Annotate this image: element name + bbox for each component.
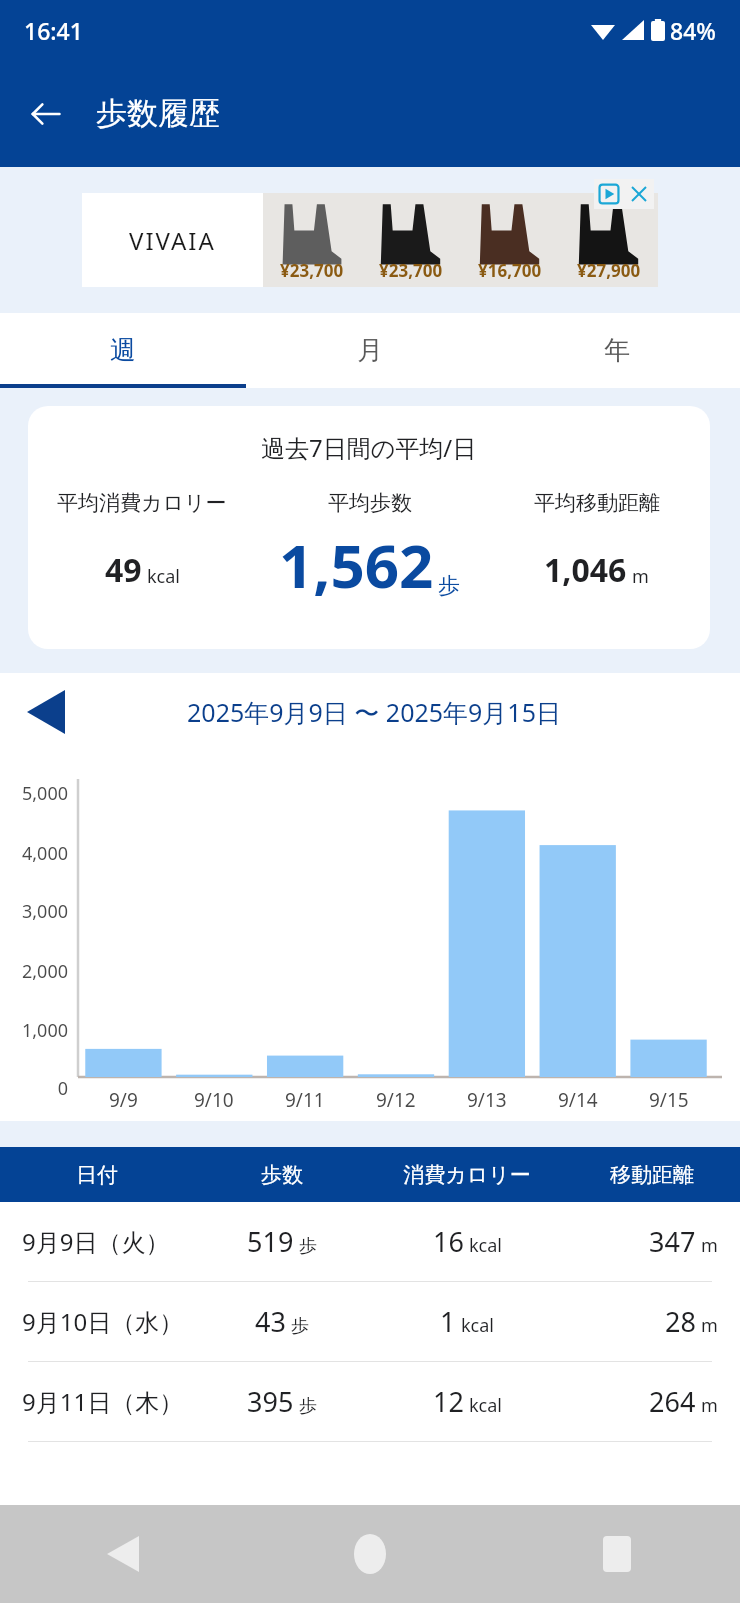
staticText: 歩 bbox=[291, 1315, 309, 1338]
button[interactable]: Ad choices bbox=[594, 179, 624, 209]
button[interactable]: 年 bbox=[493, 313, 740, 388]
staticText: 347 bbox=[649, 1223, 696, 1260]
staticText: 9/13 bbox=[467, 1087, 507, 1113]
staticText: 3,000 bbox=[0, 899, 68, 924]
staticText: 歩数履歴 bbox=[96, 94, 220, 133]
staticText: kcal bbox=[469, 1233, 502, 1258]
staticText: 日付 bbox=[0, 1162, 194, 1188]
button[interactable]: Home bbox=[246, 1505, 493, 1603]
staticText: 週 bbox=[110, 334, 136, 367]
staticText: 歩 bbox=[299, 1235, 317, 1258]
button[interactable]: 9月10日（水） bbox=[0, 1282, 740, 1361]
staticText: 消費カロリー bbox=[370, 1162, 564, 1188]
staticText: 49 bbox=[105, 548, 142, 592]
staticText: 84% bbox=[670, 15, 716, 46]
staticText: 1,046 bbox=[544, 548, 627, 592]
staticText: 2,000 bbox=[0, 959, 68, 984]
staticText: m bbox=[632, 564, 649, 589]
button[interactable]: Close ad bbox=[624, 179, 654, 209]
button[interactable]: Back bbox=[14, 82, 78, 146]
staticText: 43 bbox=[255, 1303, 286, 1340]
staticText: 395 bbox=[247, 1383, 294, 1420]
button[interactable]: 週 bbox=[0, 313, 246, 388]
button[interactable]: 9月9日（火） bbox=[0, 1202, 740, 1281]
staticText: 9/9 bbox=[109, 1087, 138, 1113]
staticText: 9/12 bbox=[376, 1087, 416, 1113]
staticText: m bbox=[701, 1233, 718, 1258]
staticText: 歩 bbox=[299, 1395, 317, 1418]
button[interactable]: VIVAIA bbox=[82, 193, 658, 287]
staticText: ¥16,700 bbox=[478, 259, 542, 282]
staticText: kcal bbox=[469, 1393, 502, 1418]
staticText: 519 bbox=[247, 1223, 294, 1260]
button[interactable]: Recents bbox=[493, 1505, 740, 1603]
staticText: VIVAIA bbox=[129, 224, 216, 257]
staticText: 9/11 bbox=[285, 1087, 325, 1113]
staticText: 平均消費カロリー bbox=[57, 490, 227, 516]
button[interactable]: Back bbox=[0, 1505, 246, 1603]
button[interactable]: 月 bbox=[246, 313, 493, 388]
staticText: 月 bbox=[357, 334, 383, 367]
staticText: 1 bbox=[440, 1303, 456, 1340]
staticText: 歩 bbox=[438, 572, 460, 600]
staticText: m bbox=[701, 1393, 718, 1418]
staticText: 9月9日（火） bbox=[22, 1225, 194, 1258]
staticText: ¥27,900 bbox=[577, 259, 641, 282]
staticText: 12 bbox=[433, 1383, 464, 1420]
staticText: ¥23,700 bbox=[379, 259, 443, 282]
staticText: 9月11日（木） bbox=[22, 1385, 194, 1418]
staticText: 歩数 bbox=[194, 1162, 370, 1188]
staticText: kcal bbox=[461, 1313, 494, 1338]
staticText: 移動距離 bbox=[564, 1162, 740, 1188]
staticText: 年 bbox=[604, 334, 630, 367]
staticText: 1,562 bbox=[279, 524, 434, 606]
staticText: 1,000 bbox=[0, 1018, 68, 1043]
staticText: 264 bbox=[649, 1383, 696, 1420]
staticText: 9/10 bbox=[194, 1087, 234, 1113]
staticText: 2025年9月9日 〜 2025年9月15日 bbox=[78, 695, 670, 729]
staticText: 16:41 bbox=[24, 15, 83, 46]
staticText: 4,000 bbox=[0, 841, 68, 866]
staticText: kcal bbox=[147, 564, 180, 589]
staticText: 16 bbox=[433, 1223, 464, 1260]
staticText: 0 bbox=[0, 1076, 68, 1101]
staticText: 5,000 bbox=[0, 781, 68, 806]
button[interactable]: 9月11日（木） bbox=[0, 1362, 740, 1441]
staticText: 9月10日（水） bbox=[22, 1305, 194, 1338]
staticText: 平均移動距離 bbox=[534, 490, 660, 516]
button[interactable]: Previous week bbox=[14, 680, 78, 744]
staticText: ¥23,700 bbox=[280, 259, 344, 282]
staticText: 過去7日間の平均/日 bbox=[261, 431, 477, 464]
staticText: 平均歩数 bbox=[328, 490, 412, 516]
staticText: 9/14 bbox=[558, 1087, 598, 1113]
staticText: 28 bbox=[665, 1303, 696, 1340]
staticText: m bbox=[701, 1313, 718, 1338]
staticText: 9/15 bbox=[649, 1087, 689, 1113]
